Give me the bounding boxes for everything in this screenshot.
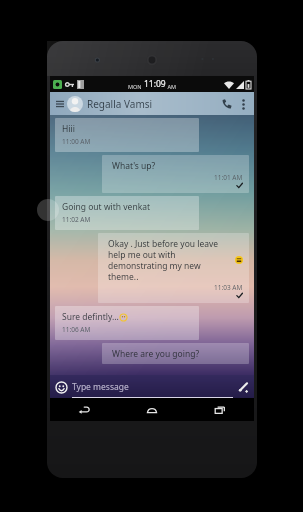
button[interactable]: Back xyxy=(50,398,118,421)
button[interactable]: Going out with venkat xyxy=(55,196,199,230)
staticText: Sure defintly... xyxy=(62,311,119,323)
staticText: Type message xyxy=(72,381,129,393)
staticText: 11:03 AM xyxy=(214,283,243,292)
staticText: 11:01 AM xyxy=(214,173,243,182)
button[interactable]: Home xyxy=(118,398,186,421)
staticText: AM xyxy=(166,83,177,90)
staticText: 11:00 AM xyxy=(62,137,91,146)
staticText: Regalla Vamsi xyxy=(87,97,153,111)
button[interactable]: Okay . Just before you leave help me out… xyxy=(98,233,249,303)
staticText: 11:09 xyxy=(144,78,166,90)
button[interactable]: More options xyxy=(236,97,250,111)
button[interactable]: Open navigation drawer xyxy=(54,98,66,110)
button[interactable]: Sure defintly... xyxy=(55,306,199,340)
button[interactable]: Insert emoji xyxy=(54,380,68,394)
button[interactable]: Where are you going? xyxy=(102,343,249,364)
staticText: Where are you going? xyxy=(112,348,200,360)
staticText: What's up? xyxy=(112,160,156,172)
button[interactable]: Call xyxy=(218,95,236,113)
staticText: Hiii xyxy=(62,123,75,135)
staticText: Going out with venkat xyxy=(62,201,151,213)
staticText: 11:06 AM xyxy=(62,325,91,334)
button[interactable]: Type message xyxy=(72,375,233,398)
staticText: MON xyxy=(128,83,144,90)
button[interactable]: Hiii xyxy=(55,118,199,152)
staticText: 11:02 AM xyxy=(62,215,91,224)
button[interactable]: What's up? xyxy=(102,155,249,193)
staticText: Okay . Just before you leave help me out… xyxy=(108,238,233,282)
button[interactable]: Recent apps xyxy=(186,398,254,421)
button[interactable]: Contact photo xyxy=(67,96,83,112)
button[interactable]: Attach file xyxy=(236,380,250,394)
